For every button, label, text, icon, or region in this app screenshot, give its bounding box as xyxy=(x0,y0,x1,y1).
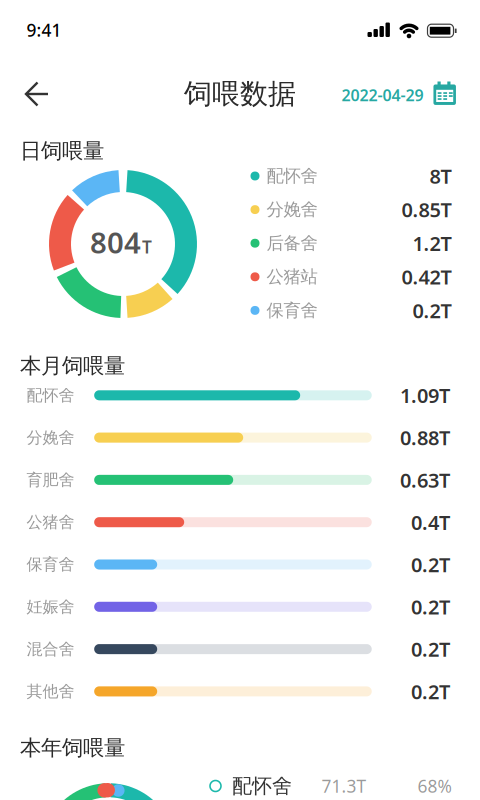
staticText: 0.2T xyxy=(411,636,450,662)
staticText: 配怀舍 xyxy=(266,165,317,187)
staticText: 0.4T xyxy=(411,509,450,535)
staticText: 0.63T xyxy=(400,467,450,493)
staticText: 8T xyxy=(429,163,451,189)
button[interactable] xyxy=(15,72,59,116)
staticText: 1.09T xyxy=(400,382,450,409)
staticText: 配怀舍 xyxy=(26,385,74,405)
staticText: 饲喂数据 xyxy=(184,77,296,111)
staticText: 其他舍 xyxy=(26,682,74,701)
staticText: 公猪舍 xyxy=(26,512,74,532)
staticText: 0.85T xyxy=(401,196,451,223)
staticText: 妊娠舍 xyxy=(26,597,74,617)
staticText: 本月饲喂量 xyxy=(20,353,125,379)
staticText: 0.42T xyxy=(401,263,451,290)
button[interactable]: 2022-04-29 xyxy=(343,71,468,117)
staticText: 育肥舍 xyxy=(26,470,74,490)
staticText: 0.2T xyxy=(412,297,451,324)
staticText: 保育舍 xyxy=(266,300,317,321)
staticText: 日饲喂量 xyxy=(20,138,104,164)
staticText: 公猪站 xyxy=(266,266,317,287)
staticText: 804 xyxy=(90,222,141,261)
staticText: 0.88T xyxy=(400,424,450,451)
staticText: 0.2T xyxy=(411,678,450,705)
staticText: 混合舍 xyxy=(26,639,74,659)
staticText: 68% xyxy=(417,774,451,797)
staticText: 1.2T xyxy=(412,230,451,256)
staticText: 配怀舍 xyxy=(232,774,292,798)
staticText: 本年饲喂量 xyxy=(20,735,125,761)
staticText: 0.2T xyxy=(411,551,450,578)
staticText: 后备舍 xyxy=(266,233,317,254)
staticText: T xyxy=(142,235,152,258)
staticText: 保育舍 xyxy=(26,555,74,574)
staticText: 0.2T xyxy=(411,593,450,620)
staticText: 9:41 xyxy=(26,18,61,41)
staticText: 2022-04-29 xyxy=(341,84,423,106)
staticText: 分娩舍 xyxy=(26,428,74,447)
staticText: 71.3T xyxy=(321,774,366,797)
staticText: 分娩舍 xyxy=(266,199,317,220)
